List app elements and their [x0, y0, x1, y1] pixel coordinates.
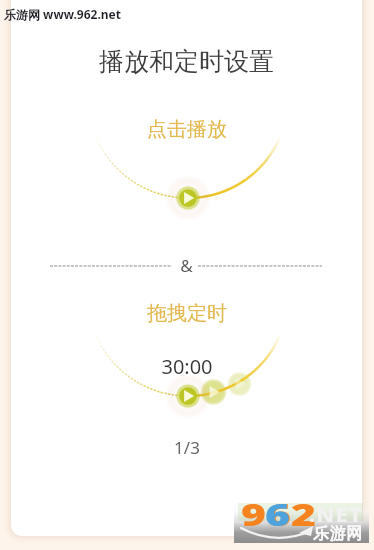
staticText: 1/3	[174, 436, 200, 459]
staticText: 乐游网	[313, 524, 363, 544]
staticText: 播放和定时设置	[99, 46, 274, 77]
staticText: 乐游网 www.962.net	[4, 6, 121, 22]
staticText: 6	[265, 494, 291, 535]
staticText: .NET	[309, 502, 363, 528]
staticText: 点击播放	[147, 117, 227, 142]
button[interactable]: 拖拽定时	[178, 386, 198, 406]
staticText: &	[180, 254, 193, 277]
button[interactable]: 播放	[178, 188, 198, 208]
staticText: 962	[241, 494, 316, 535]
staticText: 拖拽定时	[147, 301, 227, 326]
staticText: 30:00	[161, 353, 213, 380]
